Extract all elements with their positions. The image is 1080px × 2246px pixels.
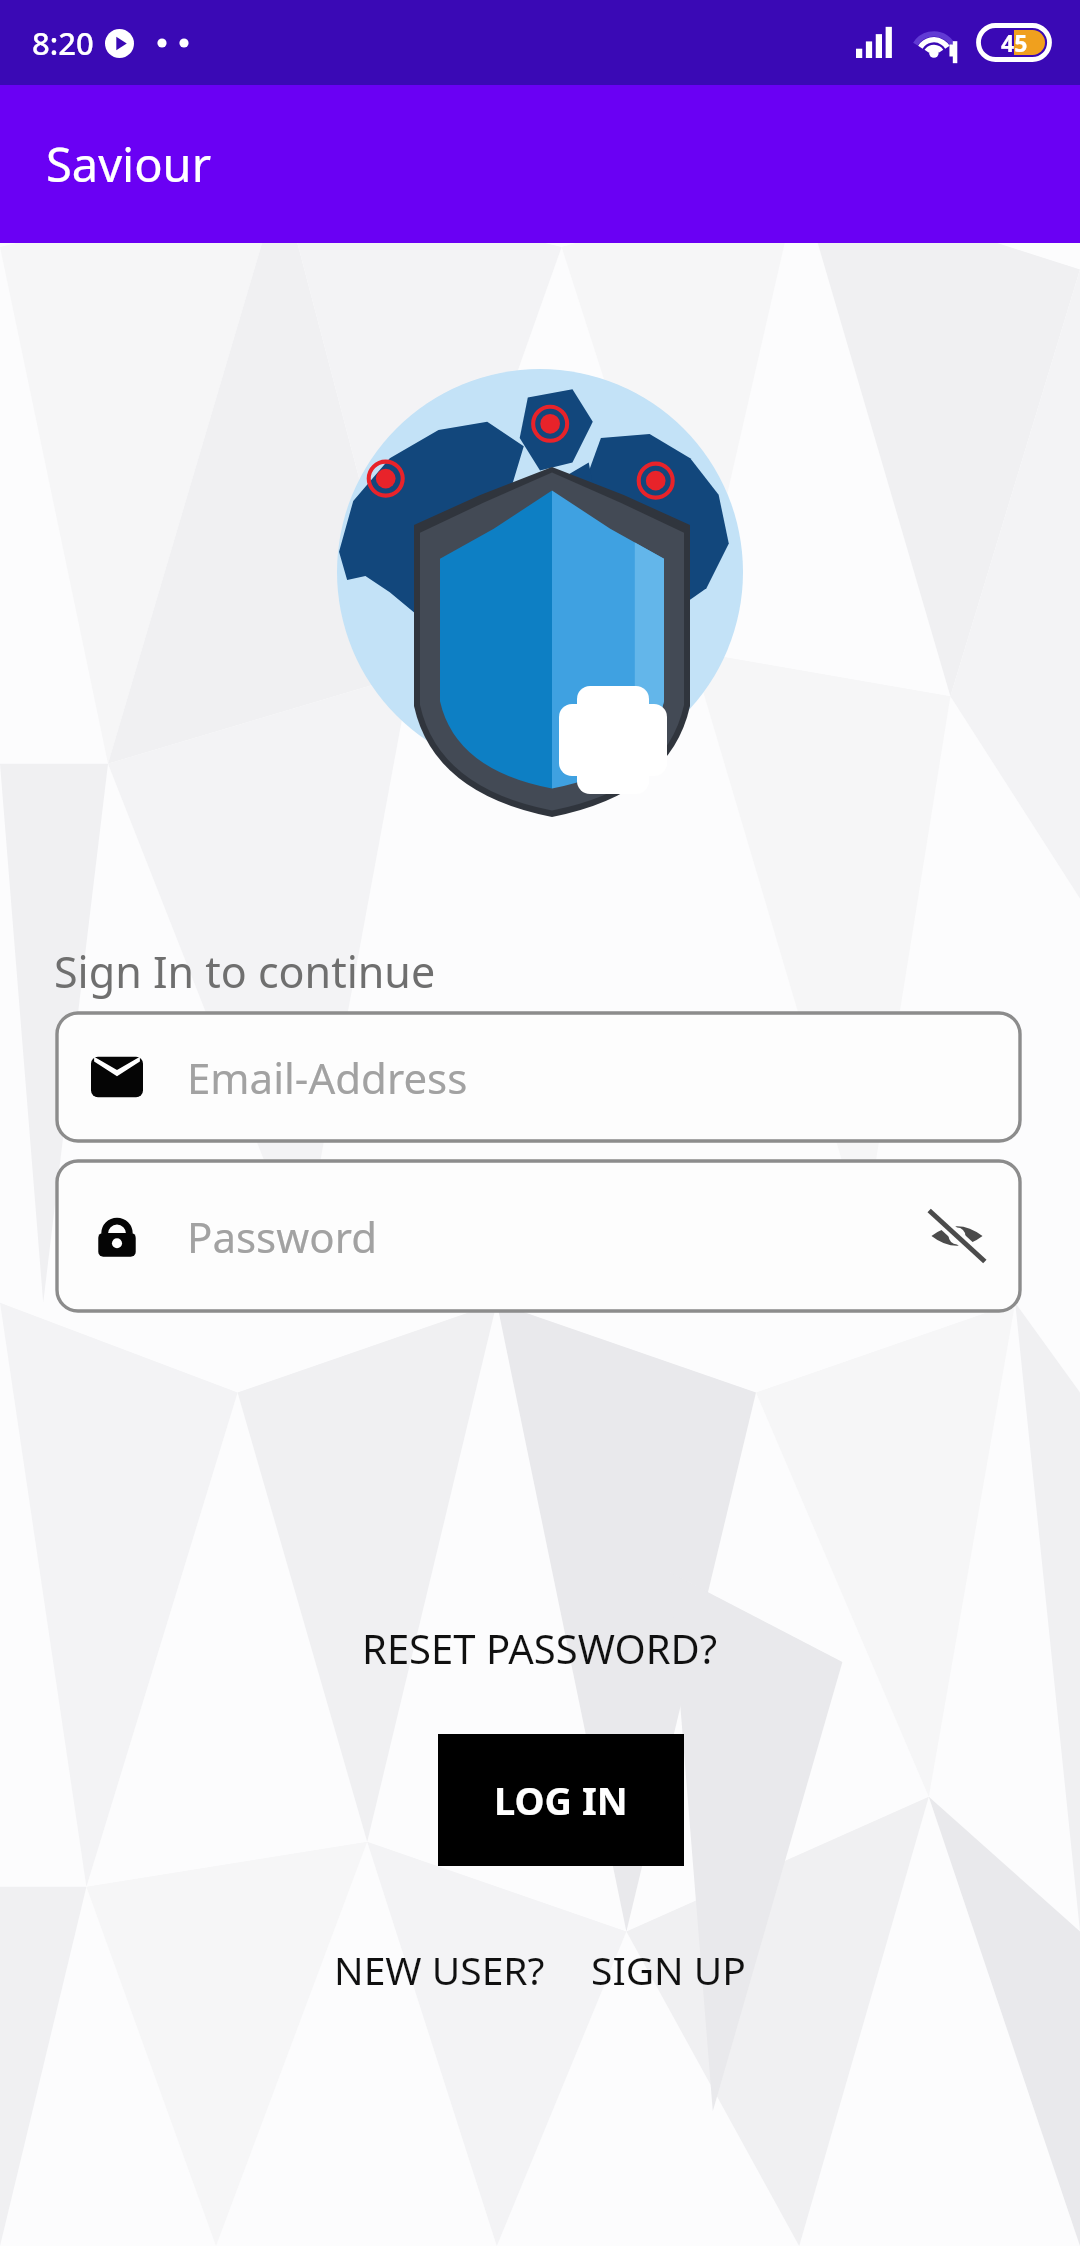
staticText: Password: [187, 1208, 928, 1265]
staticText: Saviour: [46, 132, 212, 196]
button[interactable]: RESET PASSWORD?: [0, 1608, 1080, 1688]
button[interactable]: SIGN UP: [583, 1935, 754, 2004]
staticText: 8:20: [32, 22, 94, 64]
button[interactable]: Password: [57, 1161, 1020, 1311]
button[interactable]: LOG IN: [438, 1734, 684, 1866]
button[interactable]: Show password: [928, 1207, 986, 1265]
staticText: Email-Address: [187, 1049, 986, 1106]
staticText: RESET PASSWORD?: [362, 1621, 718, 1675]
staticText: SIGN UP: [591, 1943, 746, 1996]
staticText: 45: [1001, 27, 1028, 58]
staticText: NEW USER?: [334, 1943, 545, 1996]
staticText: LOG IN: [494, 1774, 628, 1826]
button[interactable]: Email-Address: [57, 1013, 1020, 1141]
button[interactable]: NEW USER?: [326, 1935, 553, 2004]
staticText: Sign In to continue: [54, 942, 436, 1001]
